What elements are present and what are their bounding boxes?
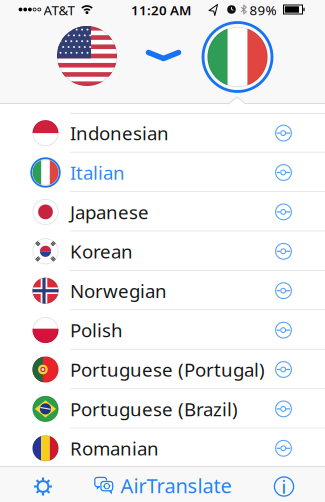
button[interactable]: About	[264, 469, 304, 502]
button[interactable]: Voice settings	[266, 313, 300, 347]
staticText: AirTranslate	[120, 472, 231, 499]
staticText: Portuguese (Brazil)	[70, 396, 238, 421]
button[interactable]: Voice settings	[266, 392, 300, 426]
staticText: Italian	[70, 160, 125, 185]
button[interactable]: Polish	[0, 310, 325, 350]
button[interactable]: Source language: English	[57, 26, 117, 86]
button[interactable]: Indonesian	[0, 113, 325, 153]
button[interactable]: Portuguese (Portugal)	[0, 350, 325, 389]
button[interactable]: Voice settings	[266, 352, 300, 386]
button[interactable]: Voice settings	[266, 116, 300, 150]
staticText: Norwegian	[70, 278, 167, 303]
button[interactable]: Voice settings	[266, 195, 300, 229]
button[interactable]: Romanian	[0, 429, 325, 468]
button[interactable]: Korean	[0, 232, 325, 271]
staticText: AT&T	[43, 1, 74, 19]
button[interactable]: Voice settings	[266, 155, 300, 189]
staticText: i	[281, 475, 286, 498]
button[interactable]: Norwegian	[0, 271, 325, 310]
button[interactable]: Voice settings	[266, 234, 300, 268]
button[interactable]: Voice settings	[266, 431, 300, 465]
button[interactable]: Italian	[0, 153, 325, 192]
button[interactable]: Settings	[21, 469, 65, 502]
staticText: 89%	[249, 1, 276, 19]
button[interactable]: Target language: Italian	[202, 21, 273, 92]
staticText: Japanese	[70, 199, 149, 224]
button[interactable]: Japanese	[0, 192, 325, 232]
staticText: Romanian	[70, 436, 159, 461]
staticText: 11:20 AM	[131, 1, 191, 19]
button[interactable]: Voice settings	[266, 274, 300, 308]
staticText: Portuguese (Portugal)	[70, 357, 265, 382]
button[interactable]: Portuguese (Brazil)	[0, 389, 325, 429]
staticText: Polish	[70, 318, 123, 342]
button[interactable]: AirTranslate	[93, 468, 231, 502]
staticText: Indonesian	[70, 121, 169, 145]
staticText: Korean	[70, 239, 133, 264]
